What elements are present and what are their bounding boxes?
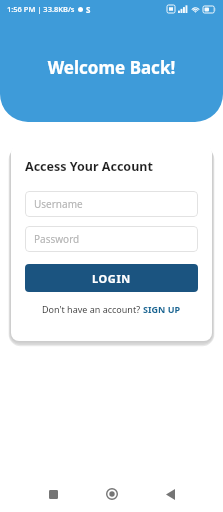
staticText: Don't have an account? [42, 303, 143, 315]
staticText: LOGIN [92, 271, 131, 286]
staticText: Welcome Back! [0, 56, 223, 79]
button[interactable]: SIGN UP [143, 303, 181, 315]
button[interactable]: LOGIN [25, 264, 198, 292]
button[interactable]: Recent apps [38, 479, 68, 509]
staticText: 1:56 PM | 33.8KB/s [7, 4, 75, 14]
staticText: Access Your Account [25, 158, 153, 175]
staticText: S [86, 4, 91, 15]
button[interactable]: Home [97, 479, 127, 509]
button[interactable]: Password [25, 226, 198, 252]
staticText: SIGN UP [143, 303, 181, 315]
staticText: Username [34, 197, 83, 211]
button[interactable]: Username [25, 191, 198, 217]
staticText: Password [34, 232, 80, 246]
button[interactable]: Back [155, 479, 185, 509]
